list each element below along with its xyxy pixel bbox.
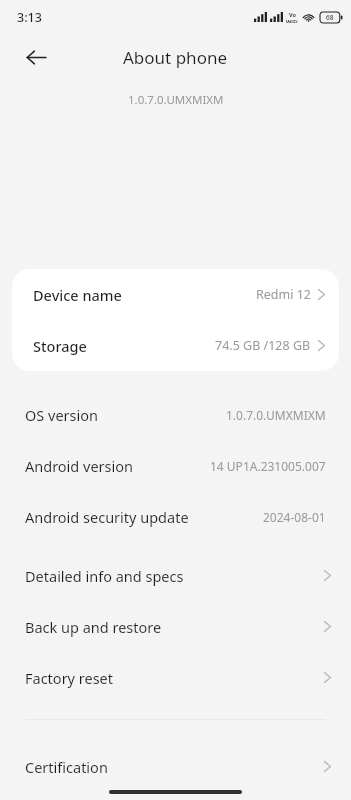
staticText: Certification — [25, 757, 108, 777]
staticText: Android version — [25, 456, 133, 476]
staticText: 68 — [326, 13, 334, 22]
staticText: Factory reset — [25, 668, 114, 688]
staticText: 1.0.7.0.UMXMIXM — [226, 407, 326, 423]
button[interactable]: Storage — [12, 320, 339, 371]
button[interactable]: OS version — [0, 389, 351, 440]
staticText: 2024-08-01 — [263, 509, 326, 525]
staticText: Vo — [289, 11, 296, 18]
staticText: 74.5 GB /128 GB — [215, 337, 311, 354]
staticText: Detailed info and specs — [25, 566, 184, 586]
staticText: Device name — [33, 285, 122, 305]
button[interactable]: Android security update — [0, 491, 351, 542]
staticText: Android security update — [25, 507, 189, 527]
staticText: 1.0.7.0.UMXMIXM — [128, 92, 224, 108]
staticText: Back up and restore — [25, 617, 162, 637]
staticText: Storage — [33, 336, 87, 356]
staticText: WiFi — [286, 18, 298, 23]
staticText: 3:13 — [17, 9, 42, 26]
staticText: OS version — [25, 405, 99, 425]
button[interactable]: Device name — [12, 269, 339, 320]
button[interactable]: Android version — [0, 440, 351, 491]
staticText: 14 UP1A.231005.007 — [210, 458, 326, 474]
button[interactable]: Certification — [0, 741, 351, 792]
button[interactable]: Detailed info and specs — [0, 550, 351, 601]
staticText: About phone — [123, 46, 228, 69]
staticText: Redmi 12 — [256, 286, 311, 303]
button[interactable]: Factory reset — [0, 652, 351, 703]
button[interactable]: Back — [18, 39, 54, 75]
button[interactable]: Back up and restore — [0, 601, 351, 652]
